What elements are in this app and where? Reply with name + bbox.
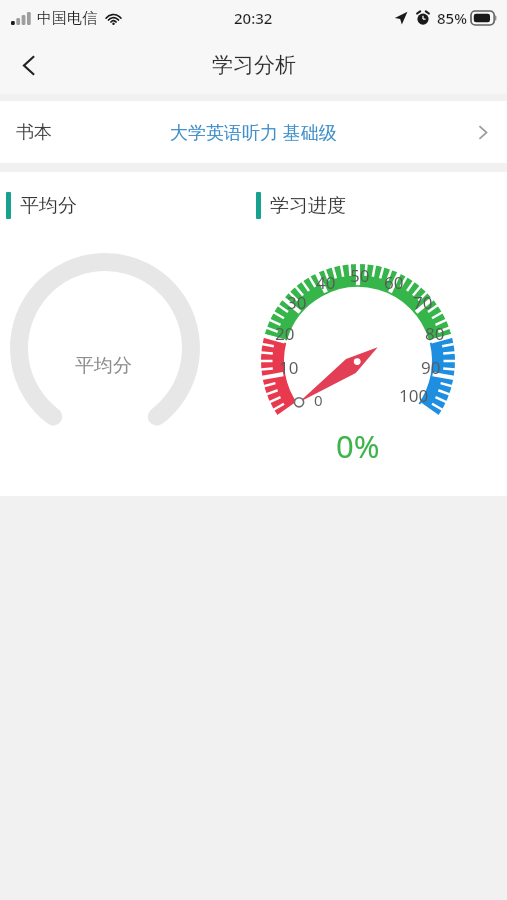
button[interactable]: Back [0, 36, 58, 94]
staticText: 书本 [16, 121, 52, 144]
staticText: 20 [275, 322, 295, 345]
staticText: 60 [384, 271, 404, 294]
staticText: 10 [279, 356, 299, 379]
staticText: 30 [287, 291, 307, 314]
staticText: 0% [336, 425, 380, 467]
staticText: 平均分 [75, 354, 132, 378]
staticText: 80 [425, 322, 445, 345]
staticText: 学习分析 [212, 52, 296, 78]
staticText: 40 [316, 271, 336, 294]
staticText: 50 [350, 264, 370, 287]
staticText: 70 [413, 291, 433, 314]
staticText: 85% [437, 8, 467, 28]
staticText: 学习进度 [270, 194, 346, 218]
staticText: 中国电信 [37, 9, 97, 28]
staticText: 0 [314, 390, 323, 410]
button[interactable]: 书本 [0, 101, 507, 163]
staticText: 90 [421, 356, 441, 379]
staticText: 平均分 [20, 194, 77, 218]
staticText: 100 [399, 384, 429, 407]
staticText: 20:32 [234, 8, 273, 28]
staticText: 大学英语听力 基础级 [170, 120, 337, 145]
